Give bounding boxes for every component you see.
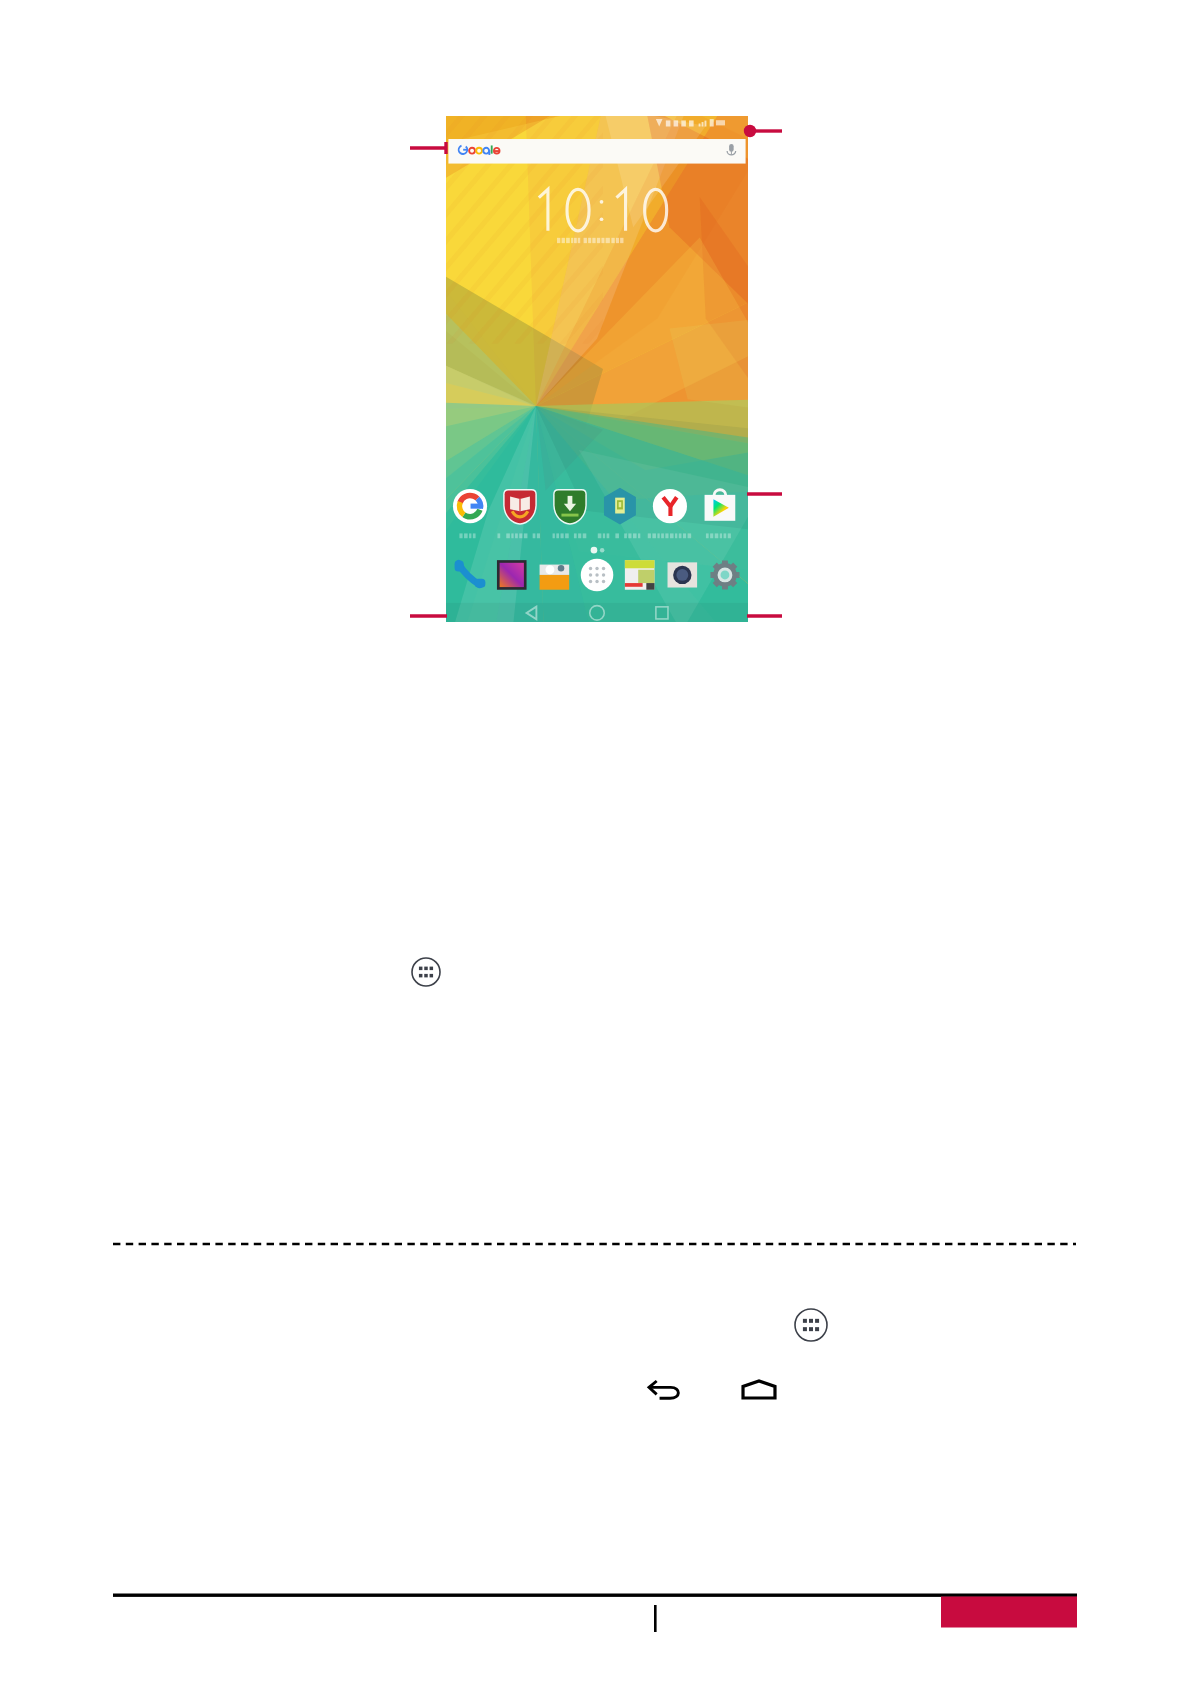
button[interactable]: Back bbox=[647, 1378, 683, 1402]
button[interactable]: eReader Prestigio bbox=[503, 489, 537, 523]
button[interactable]: Phone bbox=[454, 559, 484, 589]
button[interactable]: Google search bbox=[448, 139, 746, 164]
button[interactable]: Yandex Browser bbox=[653, 489, 687, 523]
button[interactable]: Settings bbox=[710, 559, 740, 589]
button[interactable]: Camera bbox=[667, 559, 697, 589]
button[interactable]: Recent apps bbox=[652, 604, 674, 622]
button[interactable]: Multi Drive bbox=[553, 489, 587, 523]
button[interactable]: Home bbox=[740, 1378, 778, 1400]
button[interactable]: Home bbox=[587, 604, 609, 622]
button[interactable]: Play Store bbox=[703, 489, 737, 523]
button[interactable]: All apps bbox=[412, 958, 440, 986]
button[interactable]: Internet Security bbox=[603, 489, 637, 523]
button[interactable]: Gallery bbox=[497, 559, 527, 589]
button[interactable]: Files bbox=[539, 559, 569, 589]
button[interactable]: All apps bbox=[582, 559, 612, 589]
button[interactable]: All apps bbox=[795, 1309, 827, 1341]
button[interactable]: Google bbox=[453, 489, 487, 523]
button[interactable]: Browser bbox=[625, 559, 655, 589]
button[interactable]: Back bbox=[521, 604, 543, 622]
